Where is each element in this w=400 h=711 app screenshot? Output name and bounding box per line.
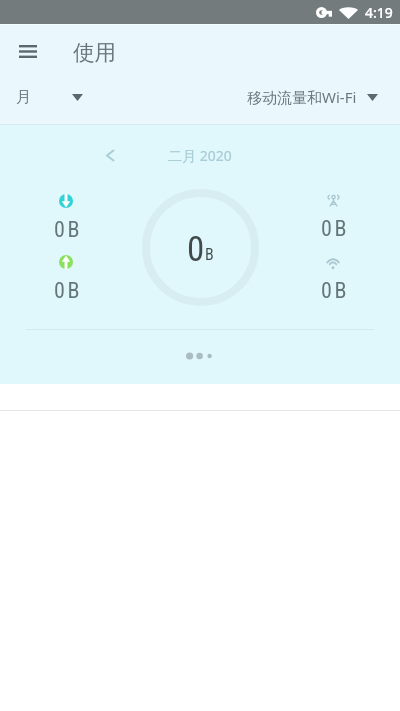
button[interactable]: 移动流量和Wi-Fi — [247, 87, 400, 107]
staticText: 0 — [187, 229, 205, 270]
button[interactable]: Wi-Fi usage — [288, 255, 378, 304]
staticText: 二月 2020 — [168, 146, 232, 165]
staticText: 4:19 — [365, 3, 393, 22]
staticText: 0 B — [54, 217, 79, 243]
button[interactable]: Mobile data usage — [288, 194, 378, 242]
staticText: 0 B — [54, 278, 79, 304]
button[interactable]: Previous month — [92, 137, 128, 173]
button[interactable]: Upload usage — [21, 255, 111, 304]
button[interactable]: Open navigation menu — [0, 25, 56, 78]
button[interactable]: 月 — [0, 88, 91, 107]
staticText: B — [205, 245, 214, 264]
staticText: 0 B — [321, 278, 346, 304]
staticText: 使用 — [73, 39, 116, 66]
staticText: 移动流量和Wi-Fi — [247, 87, 357, 107]
staticText: 月 — [16, 88, 31, 107]
staticText: 0 B — [321, 216, 346, 242]
button[interactable]: Download usage — [21, 194, 111, 243]
